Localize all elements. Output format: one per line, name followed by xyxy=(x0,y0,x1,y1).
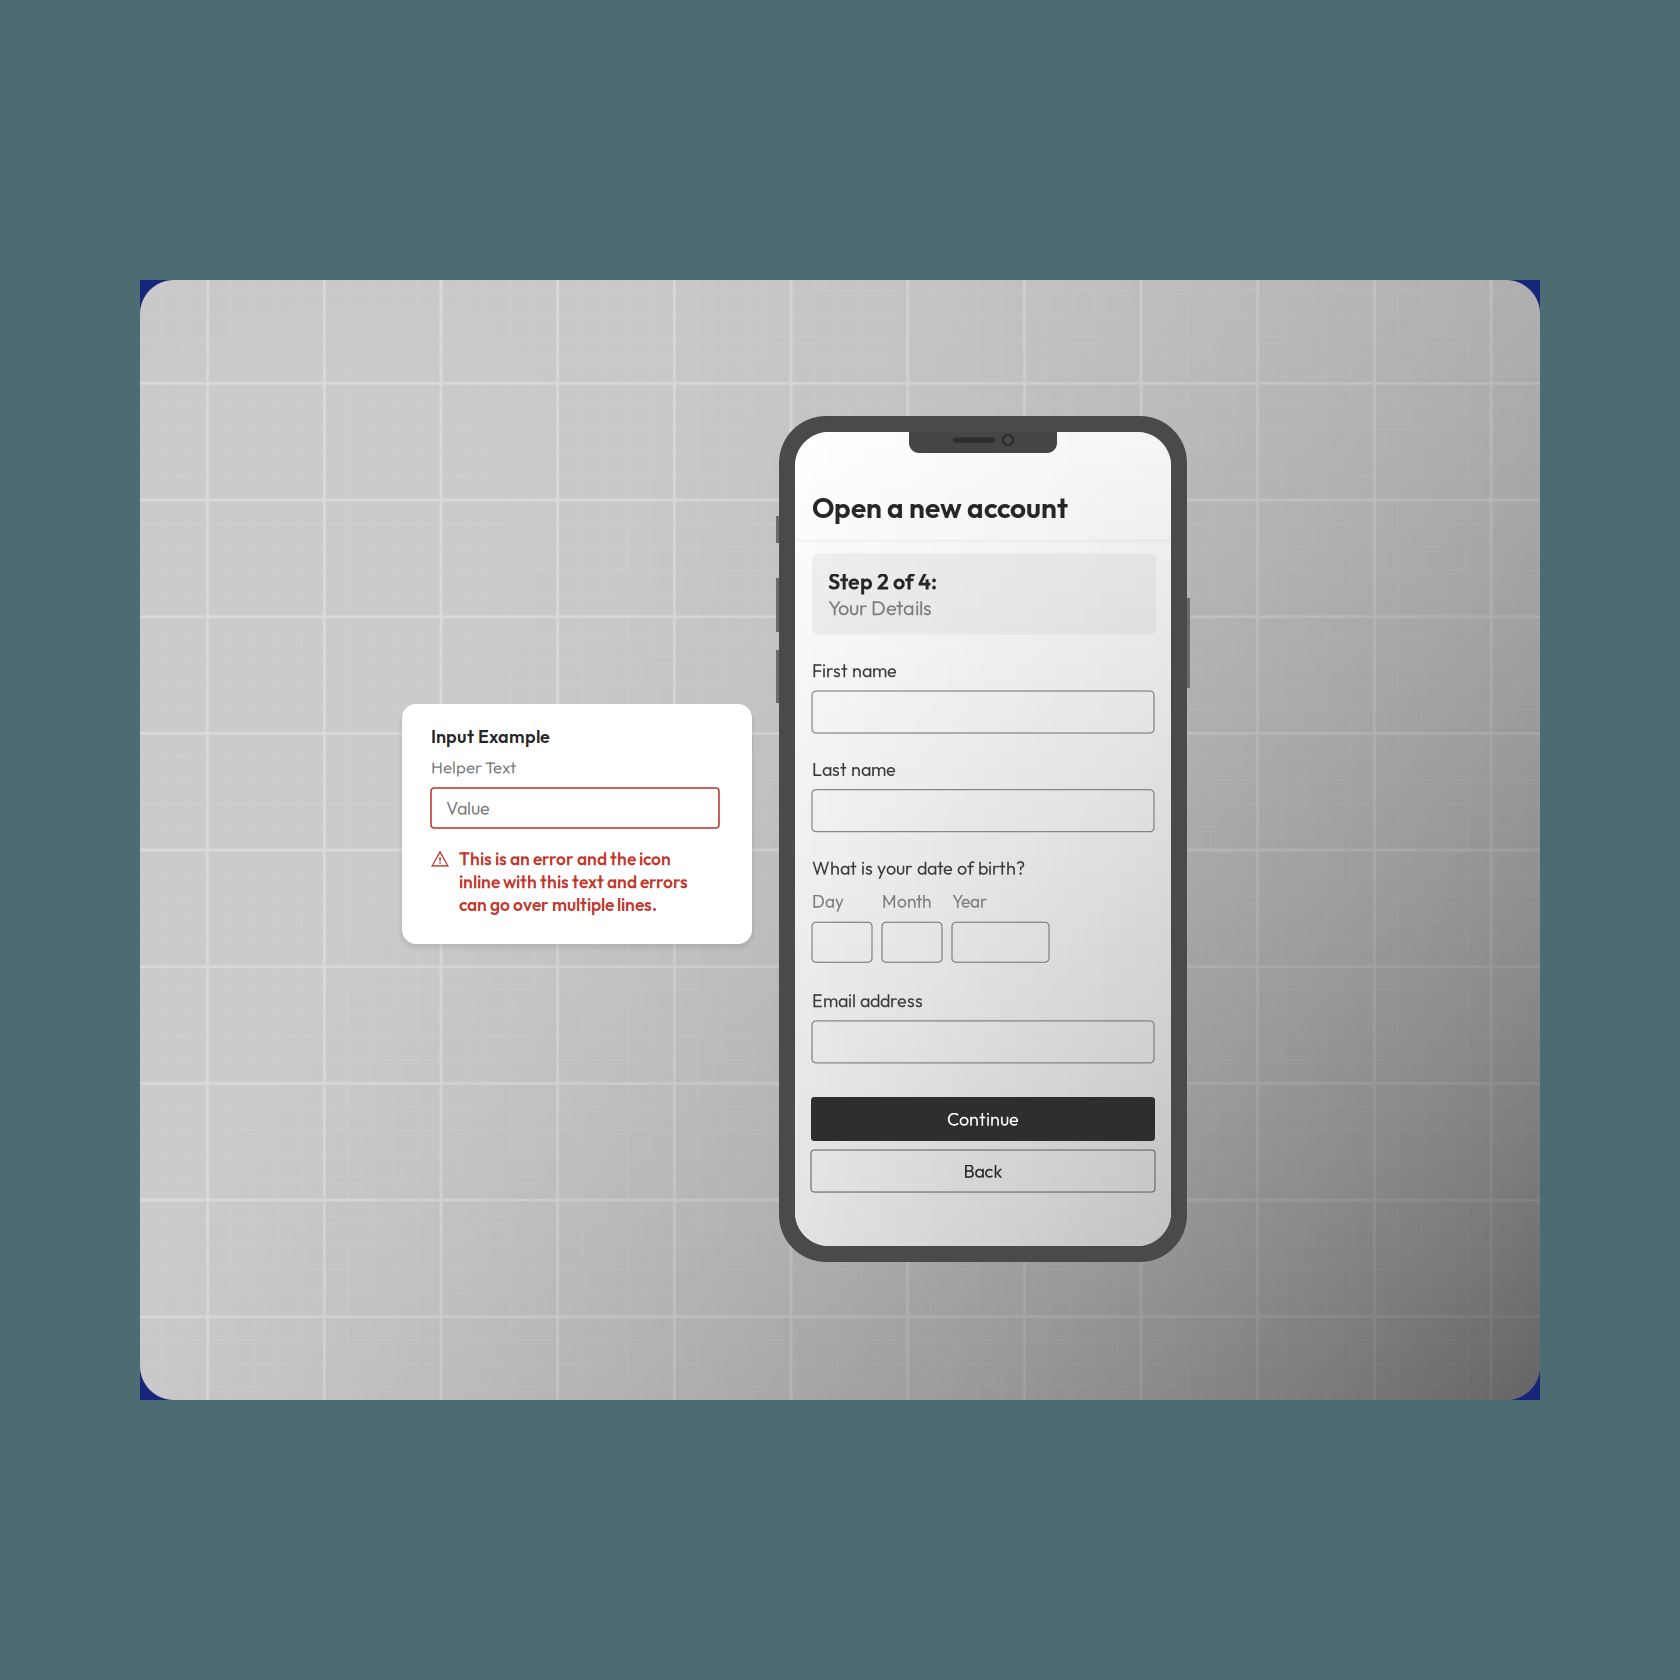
button[interactable]: Email address xyxy=(812,1021,1154,1063)
staticText: Step 2 of 4: xyxy=(828,568,937,595)
staticText: Open a new account xyxy=(812,490,1068,525)
staticText: Day xyxy=(812,890,844,912)
button[interactable]: Last name xyxy=(812,790,1154,832)
staticText: Input Example xyxy=(431,725,550,748)
staticText: What is your date of birth? xyxy=(812,857,1025,879)
staticText: Your Details xyxy=(828,595,932,620)
button[interactable]: First name xyxy=(812,691,1154,733)
button[interactable]: Month xyxy=(882,922,942,962)
staticText: Back xyxy=(963,1160,1002,1182)
staticText: This is an error and the icon inline wit… xyxy=(459,848,688,915)
button[interactable]: Year xyxy=(952,922,1049,962)
staticText: First name xyxy=(812,659,897,682)
button[interactable]: Value xyxy=(431,788,719,828)
staticText: Email address xyxy=(812,989,923,1012)
button[interactable]: Continue xyxy=(811,1097,1155,1141)
staticText: Last name xyxy=(812,758,896,781)
button[interactable]: Day xyxy=(812,922,872,962)
staticText: Continue xyxy=(947,1108,1019,1130)
button[interactable]: Back xyxy=(811,1150,1155,1192)
staticText: Year xyxy=(952,890,987,912)
staticText: Value xyxy=(446,797,490,819)
staticText: Helper Text xyxy=(431,757,516,778)
staticText: Month xyxy=(882,890,931,912)
